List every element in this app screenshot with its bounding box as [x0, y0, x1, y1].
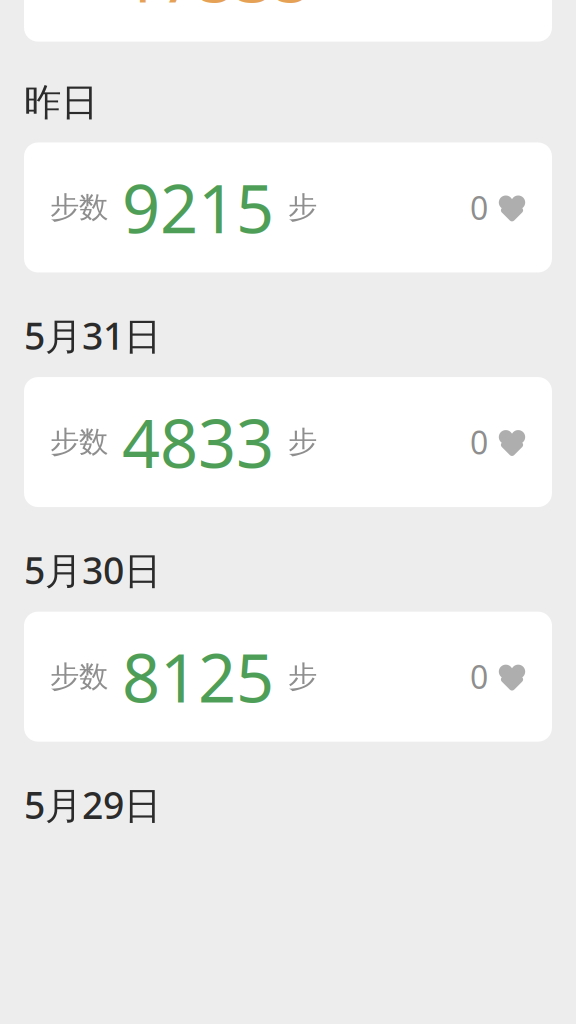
staticText: 0 — [470, 655, 488, 698]
button[interactable]: 步数 — [24, 612, 552, 742]
staticText: 步数 — [50, 424, 108, 460]
staticText: 17535 — [122, 0, 312, 21]
staticText: 5月29日 — [24, 780, 161, 829]
staticText: 0 — [470, 186, 488, 229]
staticText: 步数 — [50, 659, 108, 695]
staticText: 步 — [288, 189, 317, 225]
button[interactable]: 步数 — [24, 142, 552, 272]
button[interactable]: 步数 — [24, 0, 552, 42]
staticText: 步数 — [50, 189, 108, 225]
staticText: 8125 — [122, 632, 274, 721]
staticText: 9215 — [122, 163, 274, 252]
staticText: 5月30日 — [24, 545, 161, 595]
staticText: 步 — [288, 659, 317, 695]
staticText: 0 — [470, 421, 488, 463]
button[interactable]: 步数 — [24, 377, 552, 507]
staticText: 5月31日 — [24, 310, 161, 360]
staticText: 步 — [288, 424, 317, 460]
staticText: 4833 — [122, 398, 274, 486]
staticText: 昨日 — [24, 80, 98, 125]
